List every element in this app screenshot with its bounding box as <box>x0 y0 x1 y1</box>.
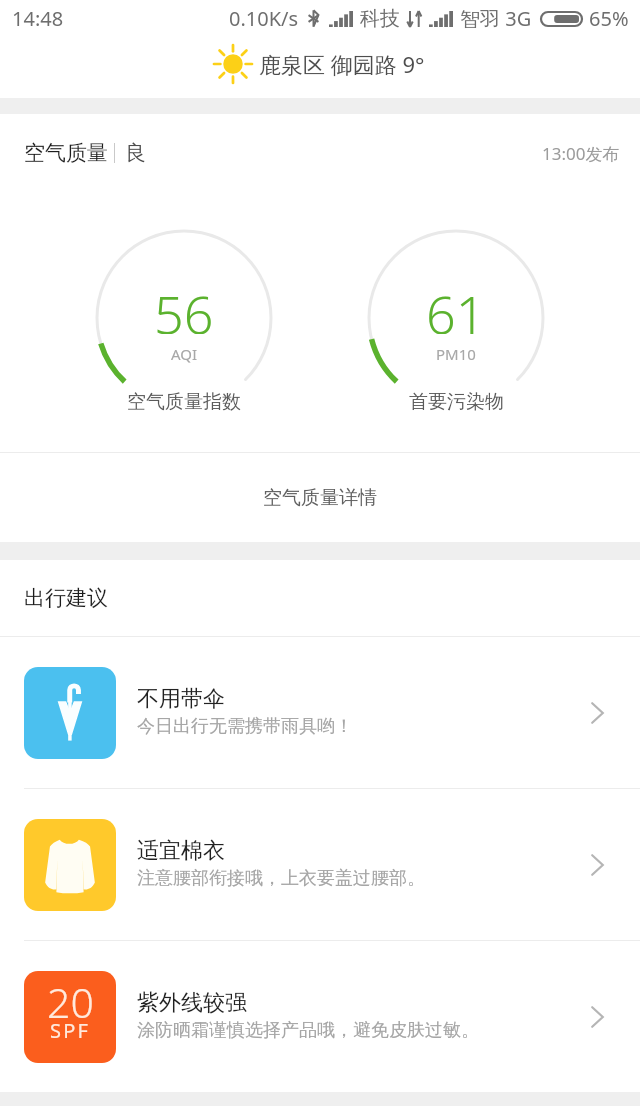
button[interactable]: 适宜棉衣 <box>0 789 640 940</box>
staticText: 不用带伞 <box>137 685 225 713</box>
button[interactable]: 空气质量详情 <box>0 453 640 542</box>
staticText: SPF <box>50 1017 91 1044</box>
staticText: 今日出行无需携带雨具哟！ <box>137 715 353 738</box>
staticText: 注意腰部衔接哦，上衣要盖过腰部。 <box>137 867 425 890</box>
other: 更多 <box>584 700 610 726</box>
staticText: 0.10K/s <box>229 5 299 32</box>
staticText: 61 <box>426 278 486 334</box>
staticText: 鹿泉区 御园路 9° <box>259 49 425 79</box>
staticText: 智羽 3G <box>460 5 532 32</box>
staticText: 56 <box>154 278 214 334</box>
staticText: PM10 <box>436 344 476 364</box>
staticText: 13:00发布 <box>542 142 620 165</box>
other: 更多 <box>584 1004 610 1030</box>
staticText: 首要污染物 <box>409 390 504 414</box>
staticText: 空气质量详情 <box>263 486 377 510</box>
staticText: 良 <box>125 140 146 166</box>
staticText: 空气质量 <box>24 140 108 166</box>
staticText: 65% <box>589 5 629 32</box>
staticText: 紫外线较强 <box>137 989 247 1017</box>
staticText: 出行建议 <box>24 585 108 611</box>
staticText: 涂防晒霜谨慎选择产品哦，避免皮肤过敏。 <box>137 1019 479 1042</box>
button[interactable]: 20 <box>0 941 640 1092</box>
other: 更多 <box>584 852 610 878</box>
staticText: 科技 <box>360 6 400 31</box>
staticText: 20 <box>47 974 94 1030</box>
staticText: AQI <box>171 344 198 364</box>
button[interactable]: 不用带伞 <box>0 637 640 788</box>
staticText: 适宜棉衣 <box>137 837 225 865</box>
staticText: 空气质量指数 <box>127 390 241 414</box>
staticText: 14:48 <box>12 5 64 32</box>
